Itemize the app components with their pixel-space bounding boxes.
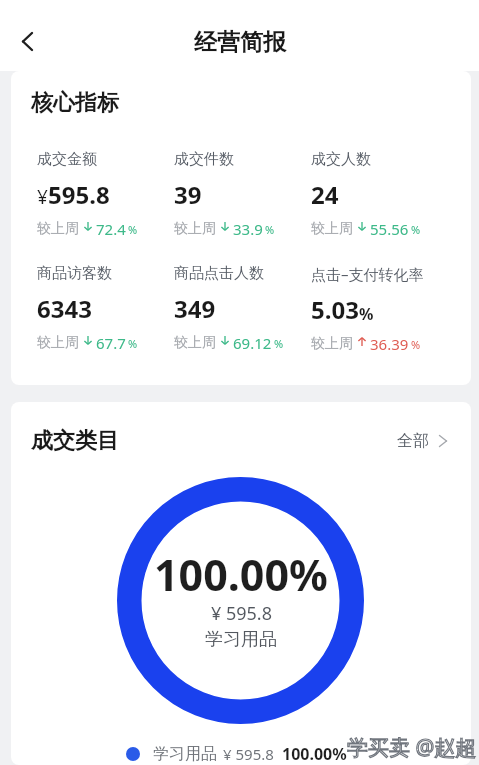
staticText: %	[411, 222, 421, 237]
staticText: 点击–支付转化率	[311, 264, 424, 284]
staticText: 较上周	[174, 334, 216, 352]
button[interactable]: Back	[5, 19, 49, 63]
staticText: 较上周	[311, 220, 353, 238]
staticText: %	[128, 336, 138, 351]
staticText: 较上周	[174, 220, 216, 238]
staticText: 72.4	[96, 219, 126, 239]
staticText: 成交人数	[311, 150, 371, 169]
staticText: 5.03	[311, 293, 359, 326]
staticText: 学习用品	[153, 744, 217, 764]
staticText: 学买卖 @赵超	[347, 733, 477, 762]
staticText: ¥ 595.8	[223, 744, 274, 764]
staticText: 较上周	[311, 335, 353, 353]
staticText: 较上周	[37, 220, 79, 238]
staticText: 69.12	[233, 333, 272, 353]
staticText: 24	[311, 178, 339, 211]
staticText: 33.9	[233, 219, 263, 239]
staticText: 595.8	[48, 178, 110, 211]
staticText: 商品访客数	[37, 264, 112, 283]
staticText: %	[128, 222, 138, 237]
staticText: %	[411, 337, 421, 352]
staticText: 67.7	[96, 333, 126, 353]
staticText: 6343	[37, 292, 92, 325]
staticText: 成交类目	[31, 427, 119, 455]
staticText: ¥ 595.8	[211, 601, 272, 626]
staticText: 全部	[397, 431, 429, 451]
staticText: 较上周	[37, 334, 79, 352]
staticText: %	[274, 336, 284, 351]
staticText: %	[265, 222, 275, 237]
staticText: 学习用品	[205, 628, 277, 651]
staticText: %	[359, 303, 374, 325]
staticText: 100.00%	[282, 743, 347, 765]
staticText: 核心指标	[31, 89, 119, 117]
staticText: 55.56	[370, 219, 409, 239]
staticText: 经营简报	[194, 28, 286, 57]
button[interactable]: 全部	[394, 426, 450, 456]
staticText: 39	[174, 178, 202, 211]
staticText: 成交金额	[37, 150, 97, 169]
staticText: 36.39	[370, 334, 409, 354]
staticText: 成交件数	[174, 150, 234, 169]
staticText: ¥	[37, 184, 48, 210]
staticText: 100.00%	[154, 545, 328, 604]
staticText: 商品点击人数	[174, 264, 264, 283]
staticText: 349	[174, 292, 216, 325]
